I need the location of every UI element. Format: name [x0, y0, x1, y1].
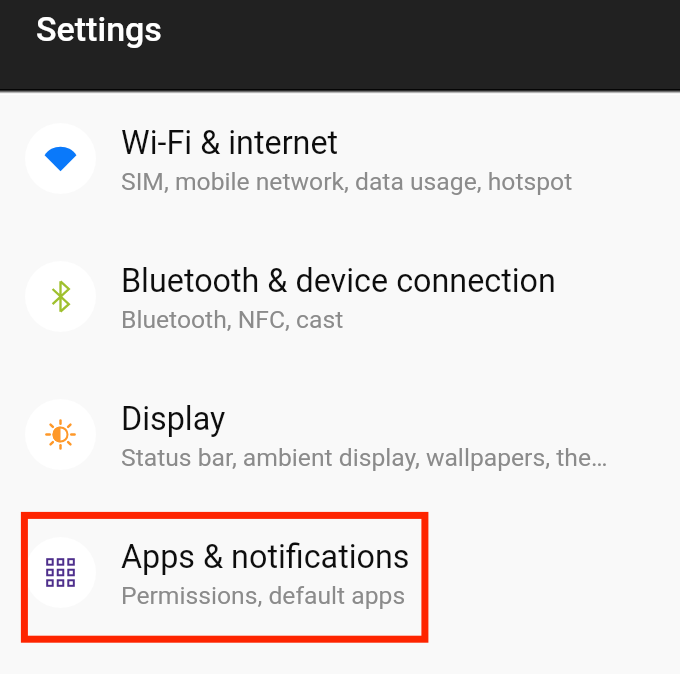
button[interactable]: Bluetooth: [0, 227, 680, 365]
staticText: Display: [121, 400, 226, 438]
staticText: Bluetooth, NFC, cast: [121, 305, 344, 334]
staticText: SIM, mobile network, data usage, hotspot: [121, 167, 573, 196]
other: Apps: [25, 537, 96, 608]
staticText: Wi-Fi & internet: [121, 124, 339, 162]
button[interactable]: Apps: [0, 503, 680, 641]
other: Display brightness: [25, 399, 96, 470]
staticText: Apps & notifications: [121, 538, 410, 576]
staticText: Bluetooth & device connection: [121, 262, 556, 300]
button[interactable]: Wi-Fi: [0, 89, 680, 227]
button[interactable]: Display brightness: [0, 365, 680, 503]
other: Wi-Fi: [25, 123, 96, 194]
staticText: Settings: [36, 9, 162, 49]
staticText: Status bar, ambient display, wallpapers,…: [121, 443, 608, 472]
staticText: Permissions, default apps: [121, 581, 406, 610]
other: Bluetooth: [25, 261, 96, 332]
